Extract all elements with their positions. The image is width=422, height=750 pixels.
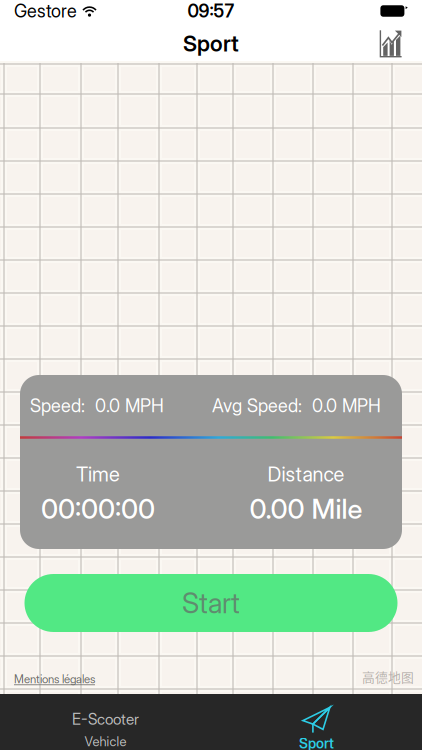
staticText: Sport xyxy=(299,735,334,750)
staticText: 09:57 xyxy=(187,0,234,22)
staticText: 00:00:00 xyxy=(41,492,155,525)
staticText: Sport xyxy=(183,30,239,57)
staticText: Vehicle xyxy=(84,734,126,749)
staticText: 高德地图 xyxy=(362,667,414,686)
staticText: Mentions légales xyxy=(14,672,95,686)
button[interactable]: E-Scooter xyxy=(0,694,211,750)
staticText: Gestore xyxy=(14,0,77,22)
button[interactable]: Sport xyxy=(211,694,422,750)
staticText: 0.00 Mile xyxy=(249,492,362,525)
staticText: Start xyxy=(182,586,240,620)
button[interactable]: Start xyxy=(24,574,397,632)
staticText: Avg Speed: 0.0 MPH xyxy=(212,395,381,417)
staticText: Time xyxy=(76,462,120,486)
button[interactable]: Mentions légales xyxy=(14,672,95,686)
staticText: E-Scooter xyxy=(72,710,139,729)
staticText: Distance xyxy=(267,462,344,486)
staticText: Speed: 0.0 MPH xyxy=(30,395,164,417)
button[interactable]: Statistics xyxy=(366,22,416,64)
